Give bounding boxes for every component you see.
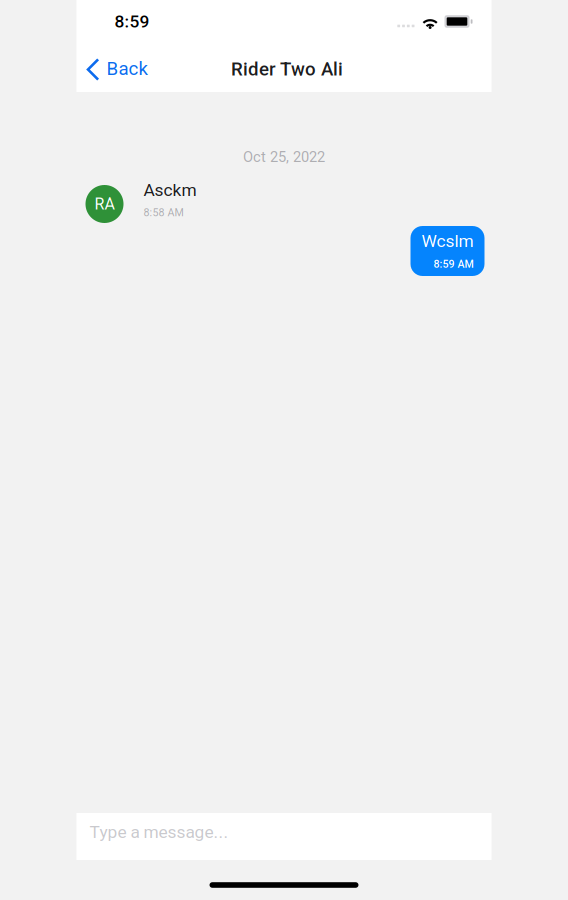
staticText: Oct 25, 2022 xyxy=(243,148,325,166)
staticText: 8:59 AM xyxy=(433,258,473,270)
staticText: 8:58 AM xyxy=(143,206,183,219)
staticText: Rider Two Ali xyxy=(231,58,343,80)
staticText: Back xyxy=(106,58,147,79)
staticText: 8:59 xyxy=(114,11,149,32)
button[interactable]: Type a message... xyxy=(76,813,491,860)
staticText: Asckm xyxy=(143,180,196,200)
staticText: Type a message... xyxy=(89,822,228,842)
staticText: RA xyxy=(94,195,114,213)
button[interactable]: Back xyxy=(76,43,157,92)
staticText: Wcslm xyxy=(421,231,473,251)
